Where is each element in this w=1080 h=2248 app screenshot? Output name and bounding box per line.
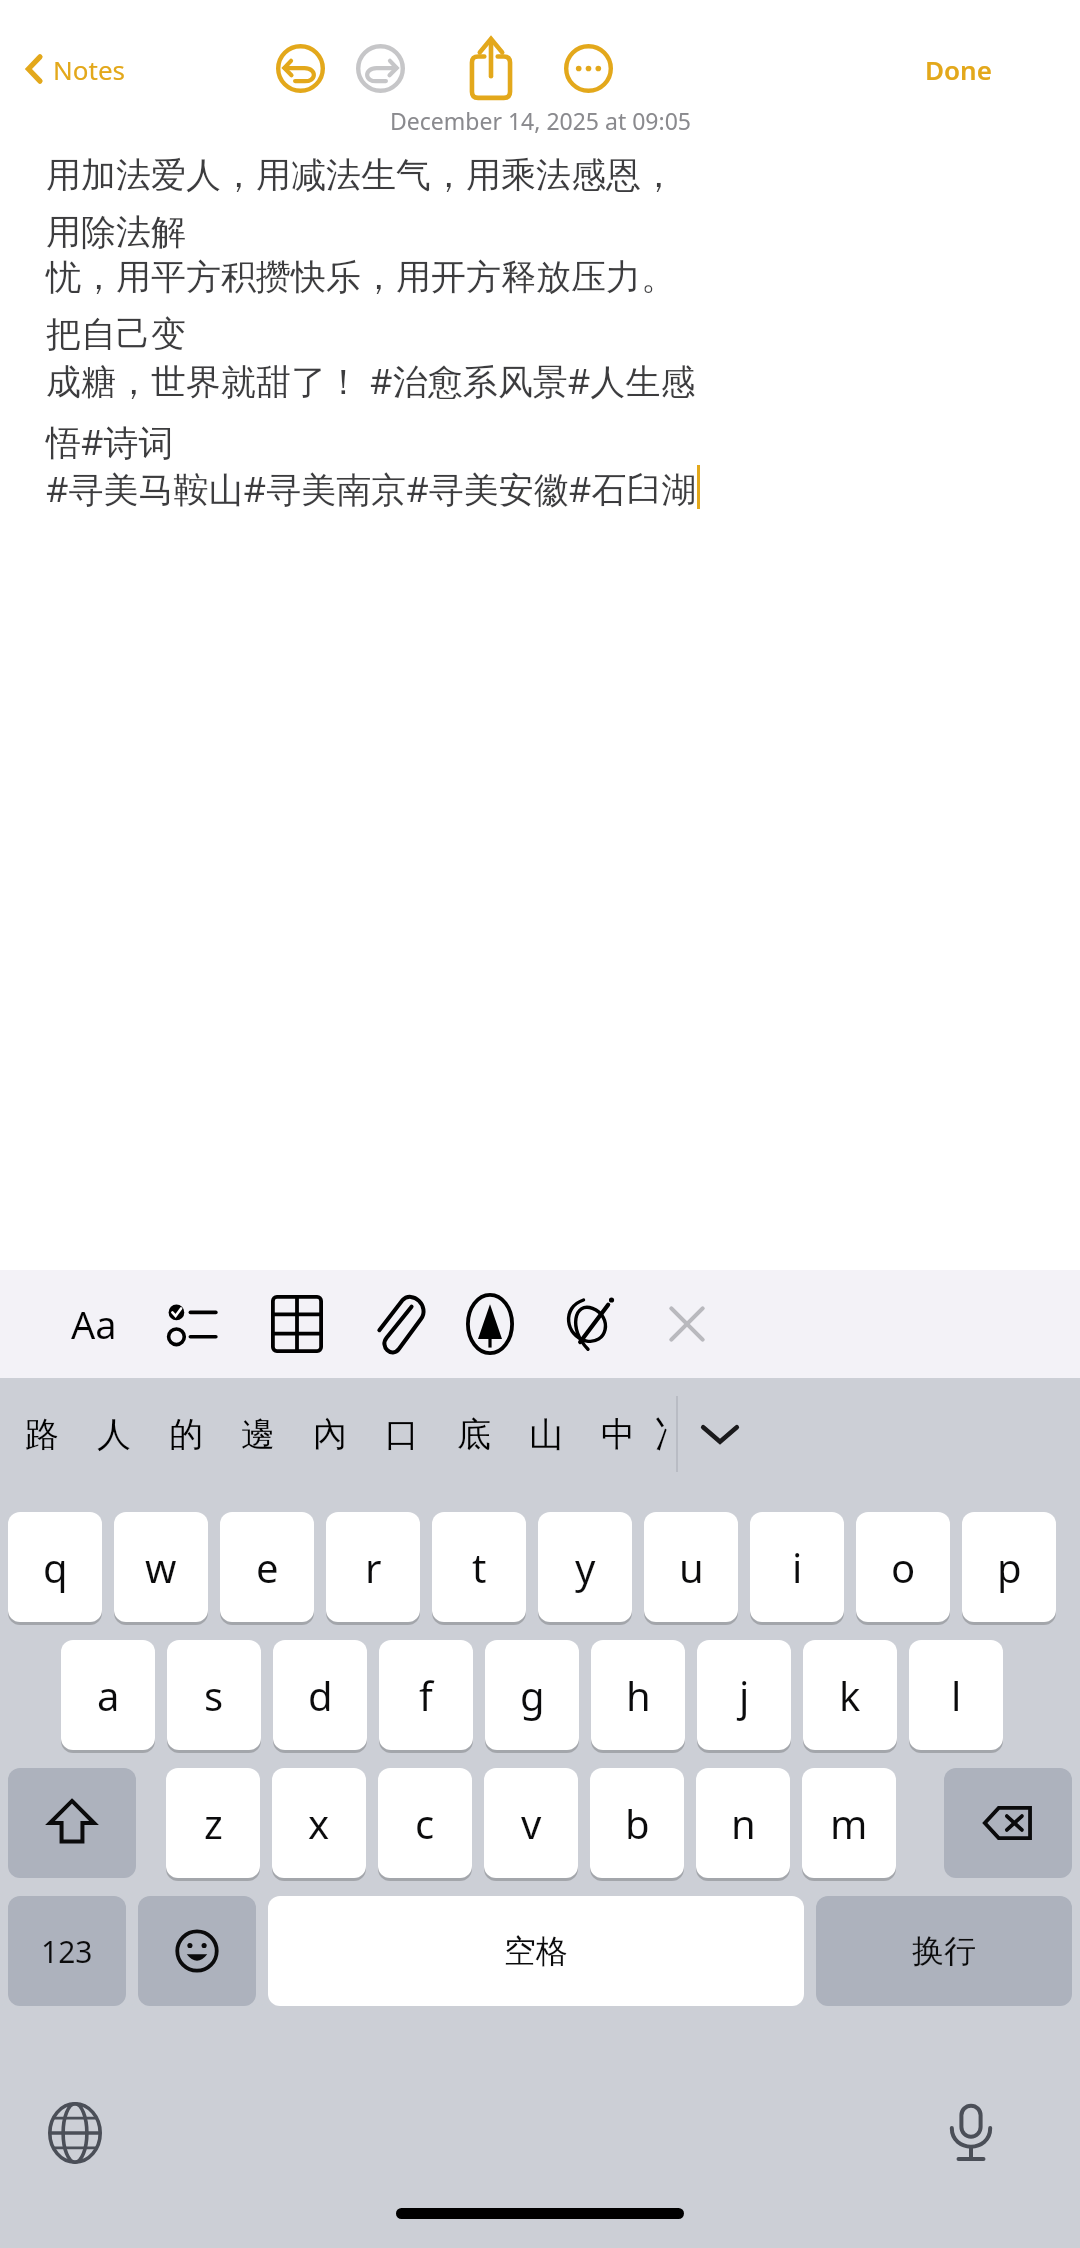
button[interactable]: 口 bbox=[366, 1378, 438, 1490]
staticText: g bbox=[520, 1668, 545, 1722]
staticText: 邊 bbox=[241, 1413, 275, 1456]
staticText: 底 bbox=[457, 1413, 491, 1456]
staticText: t bbox=[472, 1540, 487, 1594]
button[interactable]: b bbox=[590, 1768, 684, 1878]
staticText: 人 bbox=[97, 1413, 131, 1456]
button[interactable]: q bbox=[8, 1512, 102, 1622]
button[interactable]: 换行 bbox=[816, 1896, 1072, 2006]
staticText: Done bbox=[925, 52, 992, 87]
button[interactable]: r bbox=[326, 1512, 420, 1622]
staticText: u bbox=[679, 1540, 704, 1594]
button[interactable]: z bbox=[166, 1768, 260, 1878]
button[interactable]: More options bbox=[561, 41, 616, 96]
button[interactable]: 的 bbox=[150, 1378, 222, 1490]
button[interactable]: Undo bbox=[273, 41, 328, 96]
button[interactable]: l bbox=[909, 1640, 1003, 1750]
button[interactable]: Scribble bbox=[546, 1280, 630, 1368]
button[interactable]: 邊 bbox=[222, 1378, 294, 1490]
button[interactable]: d bbox=[273, 1640, 367, 1750]
button[interactable]: Text format bbox=[52, 1280, 136, 1368]
staticText: Notes bbox=[53, 52, 125, 87]
staticText: r bbox=[365, 1540, 382, 1594]
button[interactable]: 123 bbox=[8, 1896, 126, 2006]
staticText: x bbox=[308, 1796, 330, 1850]
button[interactable]: Close keyboard bbox=[645, 1280, 729, 1368]
button[interactable]: Backspace bbox=[944, 1768, 1072, 1878]
staticText: w bbox=[145, 1540, 177, 1594]
staticText: #寻美马鞍山#寻美南京#寻美安徽#石臼湖 bbox=[46, 465, 697, 513]
button[interactable]: 山 bbox=[510, 1378, 582, 1490]
staticText: n bbox=[731, 1796, 756, 1850]
button[interactable]: Notes bbox=[20, 42, 129, 96]
button[interactable]: Table bbox=[255, 1280, 339, 1368]
staticText: 换行 bbox=[912, 1931, 976, 1971]
button[interactable]: h bbox=[591, 1640, 685, 1750]
staticText: i bbox=[792, 1540, 803, 1594]
staticText: y bbox=[575, 1540, 596, 1594]
button[interactable]: v bbox=[484, 1768, 578, 1878]
staticText: d bbox=[308, 1668, 333, 1722]
button[interactable]: s bbox=[167, 1640, 261, 1750]
staticText: l bbox=[951, 1668, 962, 1722]
button[interactable]: e bbox=[220, 1512, 314, 1622]
staticText: 空格 bbox=[504, 1931, 568, 1971]
button[interactable]: 空格 bbox=[268, 1896, 804, 2006]
staticText: 路 bbox=[25, 1413, 59, 1456]
button[interactable]: 內 bbox=[294, 1378, 366, 1490]
button[interactable]: u bbox=[644, 1512, 738, 1622]
button[interactable]: f bbox=[379, 1640, 473, 1750]
button[interactable]: 路 bbox=[6, 1378, 78, 1490]
button[interactable]: k bbox=[803, 1640, 897, 1750]
button[interactable]: w bbox=[114, 1512, 208, 1622]
button[interactable]: 人 bbox=[78, 1378, 150, 1490]
button[interactable]: o bbox=[856, 1512, 950, 1622]
button[interactable]: 中 bbox=[582, 1378, 654, 1490]
button[interactable]: i bbox=[750, 1512, 844, 1622]
button[interactable]: Redo bbox=[353, 41, 408, 96]
button[interactable]: 底 bbox=[438, 1378, 510, 1490]
staticText: m bbox=[830, 1796, 868, 1850]
staticText: h bbox=[626, 1668, 651, 1722]
staticText: 123 bbox=[41, 1931, 93, 1972]
button[interactable]: n bbox=[696, 1768, 790, 1878]
button[interactable]: Hide candidates bbox=[684, 1378, 756, 1490]
button[interactable]: Switch keyboard language bbox=[36, 2094, 114, 2172]
button[interactable]: m bbox=[802, 1768, 896, 1878]
staticText: 內 bbox=[313, 1413, 347, 1456]
button[interactable]: p bbox=[962, 1512, 1056, 1622]
staticText: e bbox=[256, 1540, 279, 1594]
staticText: 山 bbox=[529, 1413, 563, 1456]
staticText: a bbox=[97, 1668, 120, 1722]
button[interactable]: Dictation bbox=[932, 2094, 1010, 2172]
button[interactable]: x bbox=[272, 1768, 366, 1878]
staticText: k bbox=[839, 1668, 861, 1722]
button[interactable]: y bbox=[538, 1512, 632, 1622]
button[interactable]: Emoji bbox=[138, 1896, 256, 2006]
staticText: December 14, 2025 at 09:05 bbox=[390, 105, 691, 136]
button[interactable]: Done bbox=[915, 42, 1002, 96]
button[interactable]: Share bbox=[463, 34, 519, 102]
staticText: 的 bbox=[169, 1413, 203, 1456]
staticText: v bbox=[521, 1796, 542, 1850]
staticText: 用加法爱人，用减法生气，用乘法感恩，用除法解 bbox=[46, 153, 706, 255]
staticText: p bbox=[997, 1540, 1022, 1594]
button[interactable]: Checklist bbox=[153, 1280, 237, 1368]
staticText: f bbox=[419, 1668, 433, 1722]
button[interactable]: t bbox=[432, 1512, 526, 1622]
button[interactable]: Markup bbox=[448, 1280, 532, 1368]
staticText: q bbox=[43, 1540, 68, 1594]
button[interactable]: a bbox=[61, 1640, 155, 1750]
button[interactable]: j bbox=[697, 1640, 791, 1750]
staticText: j bbox=[739, 1668, 750, 1722]
staticText: o bbox=[891, 1540, 916, 1594]
staticText: 忧，用平方积攒快乐，用开方释放压力。把自己变 bbox=[46, 255, 706, 357]
staticText: 中 bbox=[601, 1413, 635, 1456]
button[interactable]: Attach bbox=[355, 1280, 439, 1368]
button[interactable]: Shift bbox=[8, 1768, 136, 1878]
staticText: 成糖，世界就甜了！ #治愈系风景#人生感悟#诗词 bbox=[46, 357, 706, 465]
button[interactable]: g bbox=[485, 1640, 579, 1750]
staticText: Aa bbox=[71, 1298, 117, 1350]
staticText: 口 bbox=[385, 1413, 419, 1456]
button[interactable]: c bbox=[378, 1768, 472, 1878]
staticText: z bbox=[204, 1796, 223, 1850]
